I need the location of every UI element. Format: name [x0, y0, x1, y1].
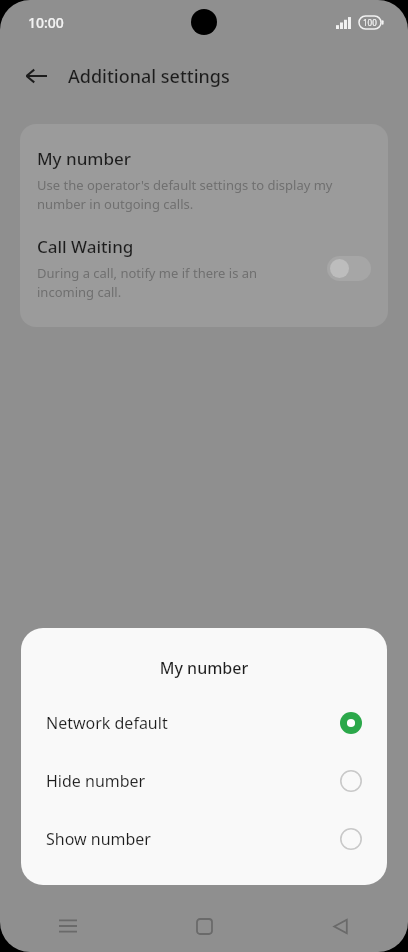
staticText: My number	[37, 147, 131, 170]
staticText: Hide number	[46, 770, 340, 792]
button[interactable]: Back	[272, 900, 408, 952]
staticText: Call Waiting	[37, 235, 134, 258]
button[interactable]: My number	[20, 124, 388, 219]
staticText: Network default	[46, 712, 340, 734]
staticText: During a call, notify me if there is an …	[37, 264, 309, 301]
staticText: Additional settings	[68, 64, 230, 89]
button[interactable]: Show number	[21, 810, 387, 868]
staticText: 100	[363, 17, 377, 28]
button[interactable]: Call Waiting	[20, 219, 388, 327]
button[interactable]: Home	[136, 900, 272, 952]
staticText: Show number	[46, 828, 340, 850]
button[interactable]: Back	[13, 54, 59, 98]
staticText: 10:00	[28, 13, 64, 32]
staticText: Use the operator's default settings to d…	[37, 176, 371, 213]
button[interactable]: Network default	[21, 694, 387, 752]
button[interactable]: Call Waiting toggle	[327, 256, 371, 281]
staticText: My number	[21, 657, 387, 679]
button[interactable]: Recents	[0, 900, 136, 952]
button[interactable]: Hide number	[21, 752, 387, 810]
